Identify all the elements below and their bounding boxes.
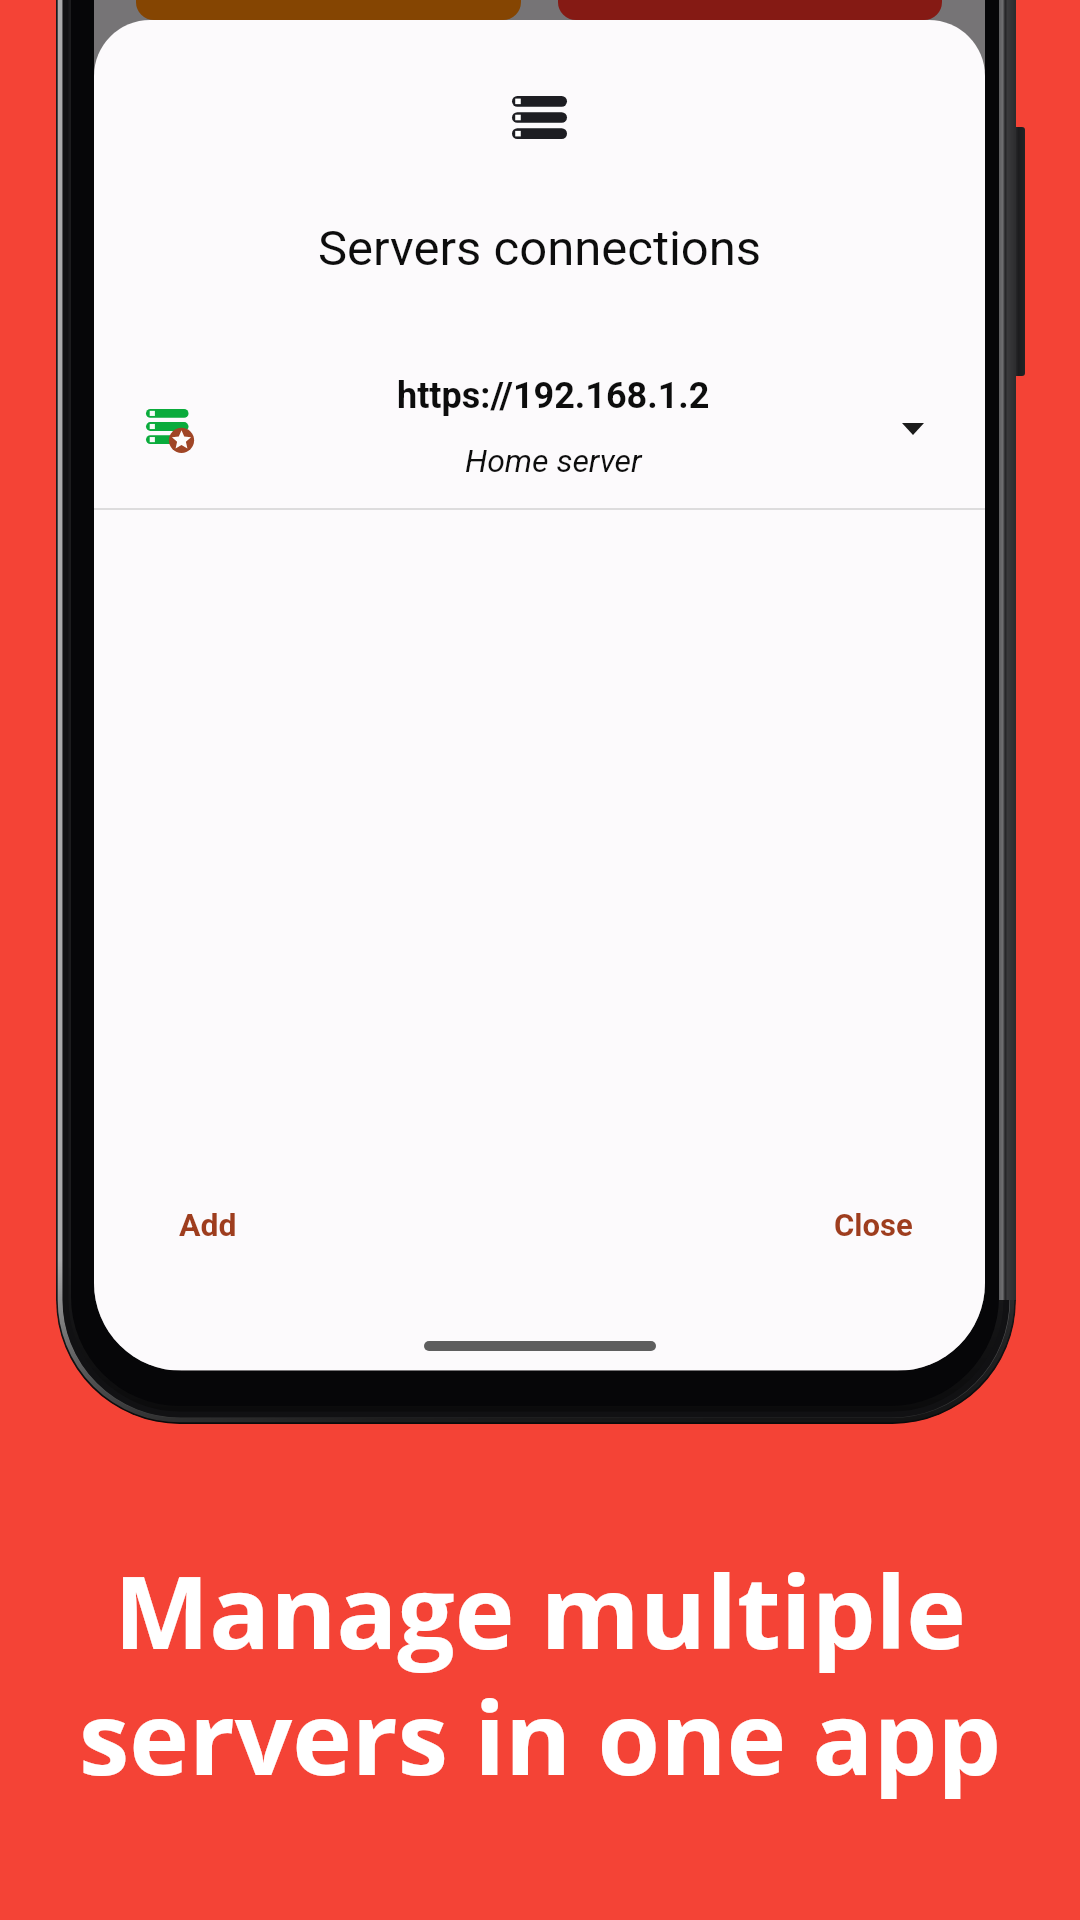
staticText: servers in one app bbox=[79, 1667, 1002, 1805]
other: Servers bbox=[512, 96, 567, 139]
staticText: Manage multiple bbox=[114, 1541, 967, 1679]
staticText: Close bbox=[834, 1207, 913, 1243]
button[interactable]: Close bbox=[810, 1187, 937, 1263]
staticText: Servers connections bbox=[318, 220, 762, 277]
staticText: Home server bbox=[465, 442, 642, 480]
button[interactable]: https://192.168.1.2 bbox=[94, 360, 985, 508]
button[interactable]: Add bbox=[155, 1186, 261, 1264]
button[interactable]: Select server bbox=[869, 391, 956, 467]
staticText: https://192.168.1.2 bbox=[397, 375, 710, 417]
staticText: Add bbox=[179, 1206, 237, 1244]
